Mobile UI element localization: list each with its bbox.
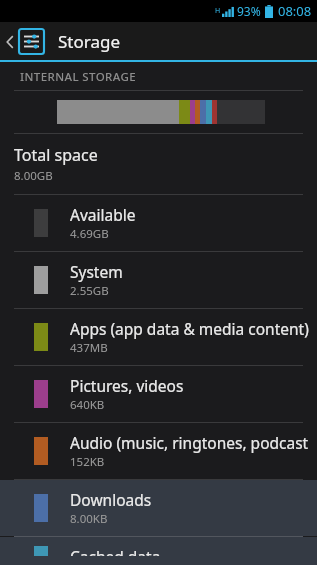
button[interactable]: System bbox=[0, 252, 317, 308]
staticText: 08:08 bbox=[278, 2, 312, 20]
button[interactable]: Cached data bbox=[0, 537, 317, 565]
staticText: System bbox=[70, 261, 123, 282]
staticText: Pictures, videos bbox=[70, 375, 184, 396]
staticText: 152KB bbox=[70, 454, 105, 470]
staticText: 4.69GB bbox=[70, 226, 109, 242]
staticText: 8.00KB bbox=[70, 511, 108, 527]
button[interactable]: Audio (music, ringtones, podcasts...) bbox=[0, 423, 317, 479]
button[interactable]: Total space bbox=[0, 134, 317, 194]
staticText: 2.55GB bbox=[70, 283, 109, 299]
staticText: Cached data bbox=[70, 546, 161, 556]
staticText: 8.00GB bbox=[14, 168, 53, 184]
staticText: Downloads bbox=[70, 489, 152, 510]
staticText: H bbox=[215, 6, 221, 16]
staticText: Storage bbox=[58, 30, 121, 53]
staticText: 437MB bbox=[70, 340, 108, 356]
button[interactable]: Apps (app data & media content) bbox=[0, 309, 317, 365]
staticText: Audio (music, ringtones, podcasts...) bbox=[70, 432, 309, 453]
staticText: Total space bbox=[14, 144, 98, 166]
button[interactable]: Pictures, videos bbox=[0, 366, 317, 422]
staticText: Available bbox=[70, 204, 136, 225]
staticText: Apps (app data & media content) bbox=[70, 318, 309, 339]
button[interactable]: Navigate up, Storage bbox=[0, 29, 52, 54]
button[interactable]: Downloads bbox=[0, 480, 317, 536]
staticText: INTERNAL STORAGE bbox=[20, 69, 137, 85]
staticText: 640KB bbox=[70, 397, 105, 413]
staticText: 93% bbox=[237, 3, 261, 19]
button[interactable]: Available bbox=[0, 195, 317, 251]
